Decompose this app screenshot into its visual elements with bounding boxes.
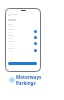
button[interactable] [6, 47, 39, 53]
staticText: Parkings [16, 80, 36, 86]
button[interactable]: Motorways [9, 74, 42, 86]
button[interactable] [6, 34, 39, 40]
button[interactable] [6, 28, 39, 34]
button[interactable] [8, 62, 37, 65]
button[interactable] [6, 13, 39, 17]
button[interactable] [6, 40, 39, 46]
staticText: Motorways [16, 74, 42, 80]
